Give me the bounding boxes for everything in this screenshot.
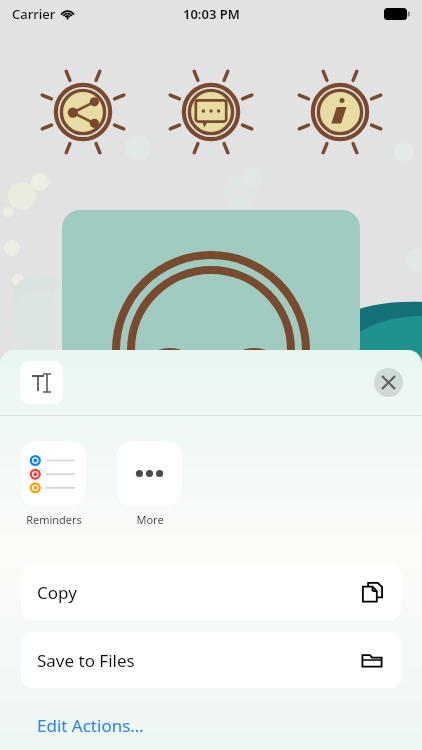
button[interactable]: Save to Files (21, 632, 401, 688)
button[interactable]: Text preview (20, 361, 63, 404)
staticText: Carrier (12, 5, 56, 23)
button[interactable]: Info (294, 66, 386, 158)
button[interactable]: Share (37, 66, 129, 158)
button[interactable]: More (117, 441, 182, 527)
staticText: Save to Files (37, 649, 135, 672)
staticText: More (136, 512, 164, 527)
staticText: Reminders (26, 512, 82, 527)
staticText: Edit Actions… (37, 714, 144, 737)
button[interactable]: Close (374, 368, 403, 397)
staticText: 10:03 PM (183, 5, 240, 23)
button[interactable]: Comments (165, 66, 257, 158)
staticText: Copy (37, 581, 77, 604)
button[interactable]: Reminders (21, 441, 86, 527)
button[interactable]: Copy (21, 564, 401, 620)
button[interactable]: Edit Actions… (0, 708, 422, 742)
